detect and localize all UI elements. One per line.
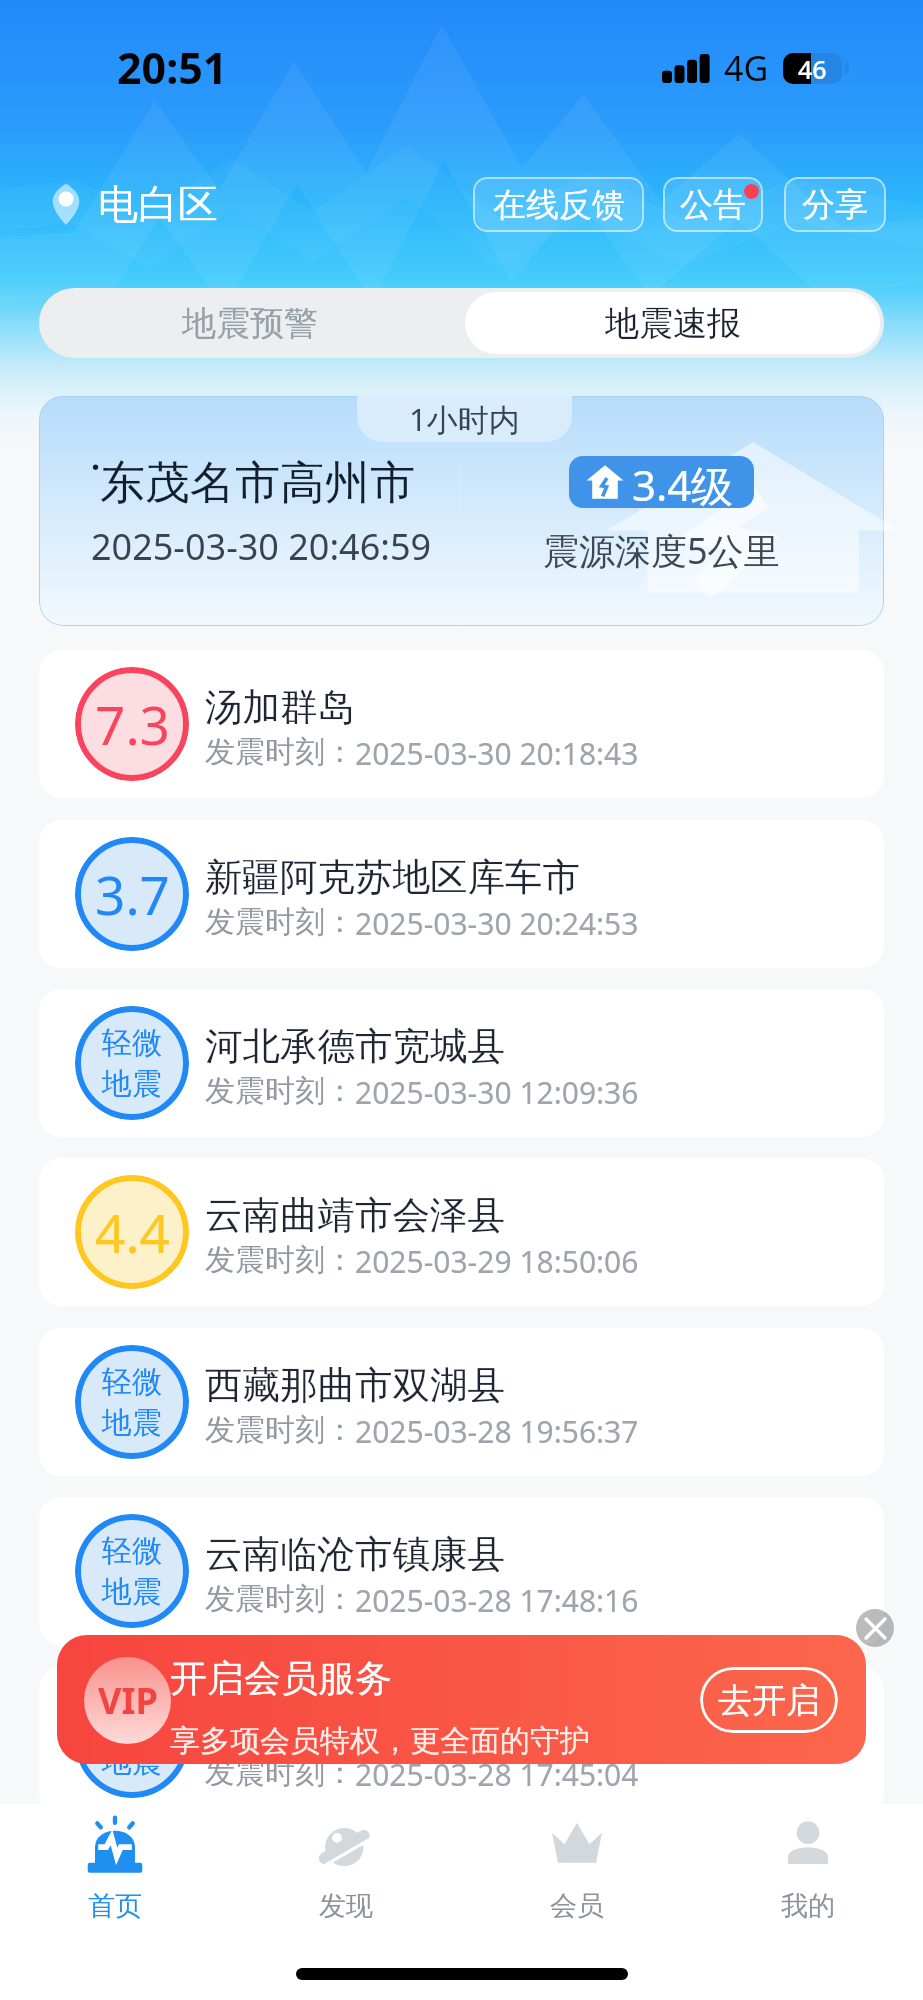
staticText: 地震预警 — [182, 302, 318, 345]
staticText: 发震时刻： — [205, 1411, 355, 1449]
staticText: 1小时内 — [409, 398, 520, 440]
button[interactable]: VIP — [57, 1635, 866, 1764]
staticText: 发震时刻： — [205, 903, 355, 941]
staticText: 发震时刻： — [205, 1241, 355, 1279]
staticText: 2025-03-28 17:48:16 — [355, 1580, 639, 1621]
staticText: 公告 — [680, 184, 746, 226]
staticText: 轻微 地震 — [102, 1024, 162, 1103]
staticText: 轻微 地震 — [102, 1363, 162, 1442]
staticText: 云南曲靖市会泽县 — [205, 1192, 505, 1239]
staticText: 2025-03-30 12:09:36 — [355, 1072, 639, 1113]
staticText: 2025-03-30 20:46:59 — [91, 522, 432, 571]
staticText: 震源深度5公里 — [543, 526, 780, 575]
button[interactable] — [39, 396, 884, 626]
button[interactable]: 轻微 地震 — [39, 1328, 884, 1476]
staticText: 46 — [798, 53, 827, 83]
staticText: 发震时刻： — [205, 1580, 355, 1618]
button[interactable]: 地震预警 — [39, 288, 461, 358]
staticText: 在线反馈 — [493, 184, 625, 226]
button[interactable]: 电白区 — [48, 179, 218, 229]
staticText: 发震时刻： — [205, 1072, 355, 1110]
staticText: 会员 — [550, 1889, 604, 1923]
staticText: 去开启 — [718, 1679, 820, 1722]
staticText: 享多项会员特权，更全面的守护 — [170, 1722, 590, 1760]
staticText: 发现 — [319, 1889, 373, 1923]
staticText: 轻微 地震 — [102, 1532, 162, 1611]
button[interactable]: 轻微 地震 — [39, 1667, 884, 1815]
staticText: 分享 — [802, 184, 868, 226]
staticText: 20:51 — [117, 38, 228, 97]
button[interactable]: 轻微 地震 — [39, 989, 884, 1137]
button[interactable]: 发现 — [230, 1804, 461, 1939]
staticText: 2025-03-29 18:50:06 — [355, 1241, 639, 1282]
staticText: 开启会员服务 — [170, 1655, 392, 1702]
button[interactable]: 会员 — [461, 1804, 692, 1939]
staticText: 西藏那曲市双湖县 — [205, 1362, 505, 1409]
staticText: 汤加群岛 — [205, 684, 355, 731]
button[interactable]: 轻微 地震 — [39, 1497, 884, 1645]
staticText: 7.3 — [95, 688, 170, 760]
staticText: 地震速报 — [605, 302, 741, 345]
staticText: 云南临沧市镇康县 — [205, 1531, 505, 1578]
staticText: 2025-03-28 17:45:04 — [355, 1754, 639, 1795]
button[interactable]: 4.4 — [39, 1158, 884, 1306]
button[interactable]: 去开启 — [700, 1667, 838, 1733]
button[interactable]: 关闭 — [856, 1609, 894, 1647]
staticText: VIP — [98, 1676, 158, 1725]
button[interactable]: 公告 — [663, 177, 763, 232]
staticText: 我的 — [781, 1889, 835, 1923]
button[interactable]: 7.3 — [39, 650, 884, 798]
staticText: 发震时刻： — [205, 733, 355, 771]
staticText: 2025-03-30 20:18:43 — [355, 733, 639, 774]
button[interactable]: 首页 — [0, 1804, 230, 1939]
staticText: 河北承德市宽城县 — [205, 1023, 505, 1070]
staticText: 电白区 — [98, 179, 218, 229]
staticText: 4.4 — [95, 1196, 170, 1268]
staticText: 2025-03-28 19:56:37 — [355, 1411, 639, 1452]
staticText: 4G — [724, 45, 769, 91]
staticText: 3.4级 — [632, 456, 734, 508]
staticText: ˙东茂名市高州市 — [91, 450, 416, 511]
staticText: 2025-03-30 20:24:53 — [355, 903, 639, 944]
button[interactable]: 3.7 — [39, 820, 884, 968]
button[interactable]: 我的 — [692, 1804, 923, 1939]
staticText: 发震时刻： — [205, 1754, 355, 1792]
staticText: 新疆阿克苏地区库车市 — [205, 854, 580, 901]
staticText: 轻微 地震 — [102, 1702, 162, 1781]
staticText: 首页 — [88, 1889, 142, 1923]
button[interactable]: 地震速报 — [465, 292, 880, 354]
button[interactable]: 在线反馈 — [473, 177, 644, 232]
staticText: 3.7 — [95, 858, 170, 930]
button[interactable]: 分享 — [784, 177, 886, 232]
